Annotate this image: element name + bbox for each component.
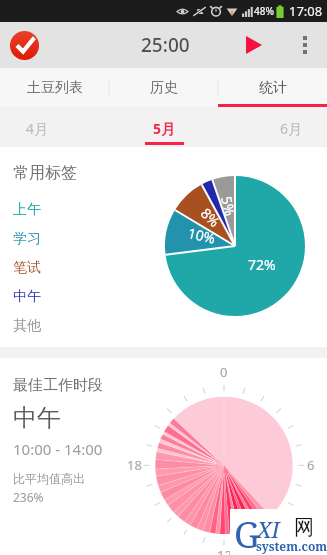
staticText: 中午 bbox=[13, 403, 61, 433]
staticText: 5月 bbox=[153, 119, 176, 138]
staticText: 比平均值高出 bbox=[13, 471, 85, 486]
staticText: 笔试 bbox=[13, 259, 41, 277]
staticText: 4月 bbox=[26, 119, 49, 138]
button[interactable]: 4月 bbox=[0, 107, 82, 146]
staticText: 统计 bbox=[259, 79, 287, 97]
staticText: XI bbox=[257, 514, 280, 544]
staticText: 6月 bbox=[280, 119, 303, 138]
button[interactable]: 6月 bbox=[246, 107, 327, 146]
button[interactable]: App logo bbox=[4, 25, 44, 65]
staticText: 18 bbox=[127, 456, 142, 474]
staticText: 6 bbox=[307, 456, 315, 474]
staticText: 5% bbox=[217, 194, 240, 218]
staticText: 10:00 - 14:00 bbox=[13, 439, 103, 459]
button[interactable]: Start timer bbox=[232, 23, 276, 67]
staticText: 48% bbox=[254, 4, 274, 18]
staticText: 其他 bbox=[13, 317, 41, 335]
button[interactable]: 土豆列表 bbox=[0, 68, 109, 107]
staticText: 236% bbox=[13, 489, 44, 505]
staticText: 常用标签 bbox=[13, 163, 77, 183]
staticText: 0 bbox=[220, 363, 228, 381]
button[interactable]: More options bbox=[283, 23, 327, 67]
staticText: 17:08 bbox=[289, 2, 323, 20]
staticText: 72% bbox=[248, 255, 276, 274]
button[interactable]: 统计 bbox=[218, 68, 327, 107]
staticText: 学习 bbox=[13, 230, 41, 248]
staticText: 历史 bbox=[150, 79, 178, 97]
staticText: 8% bbox=[197, 204, 224, 231]
staticText: 25:00 bbox=[141, 32, 190, 58]
staticText: 土豆列表 bbox=[27, 79, 83, 97]
button[interactable]: 5月 bbox=[119, 107, 209, 146]
staticText: 最佳工作时段 bbox=[13, 376, 103, 395]
button[interactable]: 历史 bbox=[109, 68, 218, 107]
staticText: 12 bbox=[217, 546, 232, 555]
staticText: 上午 bbox=[13, 201, 41, 219]
staticText: 网 bbox=[294, 515, 314, 540]
staticText: system.com bbox=[256, 538, 327, 554]
staticText: G bbox=[234, 510, 260, 555]
staticText: 10% bbox=[186, 223, 218, 248]
staticText: 中午 bbox=[13, 288, 41, 306]
